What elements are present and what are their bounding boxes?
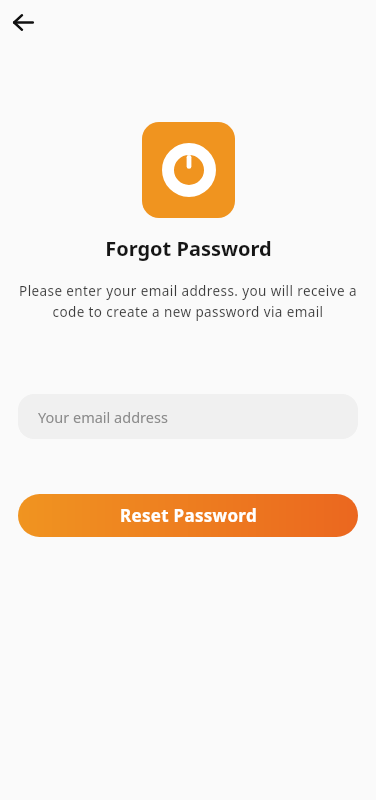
button[interactable]: Reset Password	[18, 494, 358, 537]
button[interactable]: Your email address	[18, 394, 358, 439]
staticText: Your email address	[38, 407, 168, 427]
staticText: Reset Password	[120, 504, 257, 527]
button[interactable]: Back	[6, 5, 40, 39]
staticText: Please enter your email address. you wil…	[19, 282, 357, 321]
staticText: Forgot Password	[105, 235, 272, 262]
